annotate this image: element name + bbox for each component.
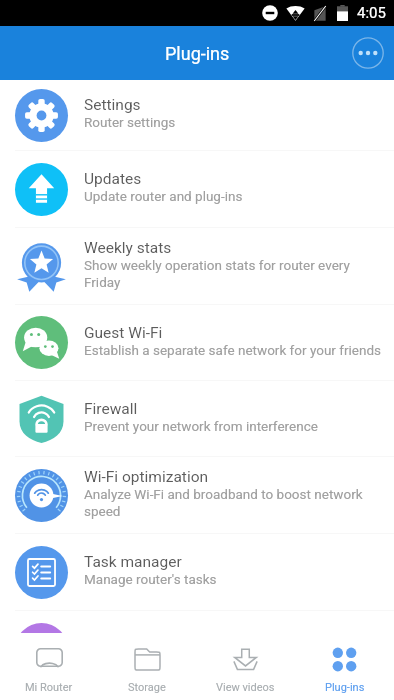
staticText: Storage [128,681,166,694]
button[interactable]: Weekly stats [0,228,394,305]
button[interactable]: Wi-Fi optimization [0,457,394,534]
button[interactable]: View videos [196,633,295,700]
staticText: Settings [84,96,141,114]
staticText: View videos [216,681,275,694]
staticText: Wi-Fi optimization [84,468,209,486]
staticText: Prevent your network from interference [84,418,318,434]
staticText: 4:05 [357,4,386,22]
button[interactable]: Plug-ins [295,633,394,700]
staticText: Task manager [84,553,182,571]
button[interactable]: Guest Wi-Fi [0,305,394,381]
button[interactable]: Back up photos [0,611,394,633]
button[interactable]: Firewall [0,381,394,457]
staticText: Plug-ins [325,681,365,694]
staticText: Manage router's tasks [84,571,217,587]
staticText: Show weekly operation stats for router e… [84,257,382,290]
button[interactable]: Settings [0,80,394,151]
staticText: Mi Router [25,681,73,694]
staticText: Analyze Wi-Fi and broadband to boost net… [84,486,382,519]
button[interactable]: Storage [98,633,196,700]
staticText: Update router and plug-ins [84,188,243,204]
staticText: Weekly stats [84,239,172,257]
button[interactable]: Updates [0,151,394,228]
button[interactable]: More options [346,31,390,75]
staticText: Firewall [84,400,138,418]
staticText: Establish a separate safe network for yo… [84,342,382,358]
staticText: Updates [84,170,142,188]
staticText: Guest Wi-Fi [84,324,163,342]
button[interactable]: Mi Router [0,633,98,700]
button[interactable]: Task manager [0,534,394,611]
staticText: Router settings [84,114,176,130]
staticText: Plug-ins [165,43,230,64]
